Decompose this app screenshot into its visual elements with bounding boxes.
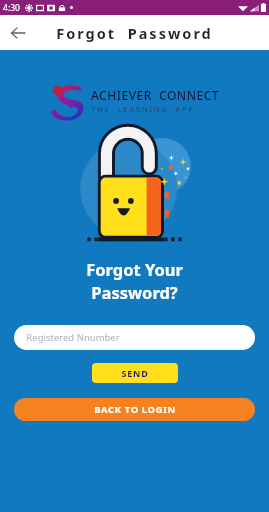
staticText: SEND bbox=[121, 367, 149, 379]
staticText: THE LEARNING APP bbox=[91, 104, 195, 114]
staticText: 4:30 bbox=[3, 2, 20, 14]
button[interactable]: BACK TO LOGIN bbox=[14, 398, 255, 421]
staticText: BACK TO LOGIN bbox=[94, 403, 176, 416]
staticText: Registered Nnumber bbox=[26, 331, 120, 344]
staticText: Forgot Password bbox=[56, 23, 213, 43]
button[interactable]: Registered Nnumber bbox=[14, 325, 255, 350]
button[interactable]: Back bbox=[3, 18, 33, 48]
staticText: Forgot Your bbox=[86, 258, 183, 280]
button[interactable]: SEND bbox=[92, 363, 178, 383]
staticText: ACHIEVER CONNECT bbox=[91, 87, 219, 103]
staticText: Password? bbox=[91, 281, 178, 303]
